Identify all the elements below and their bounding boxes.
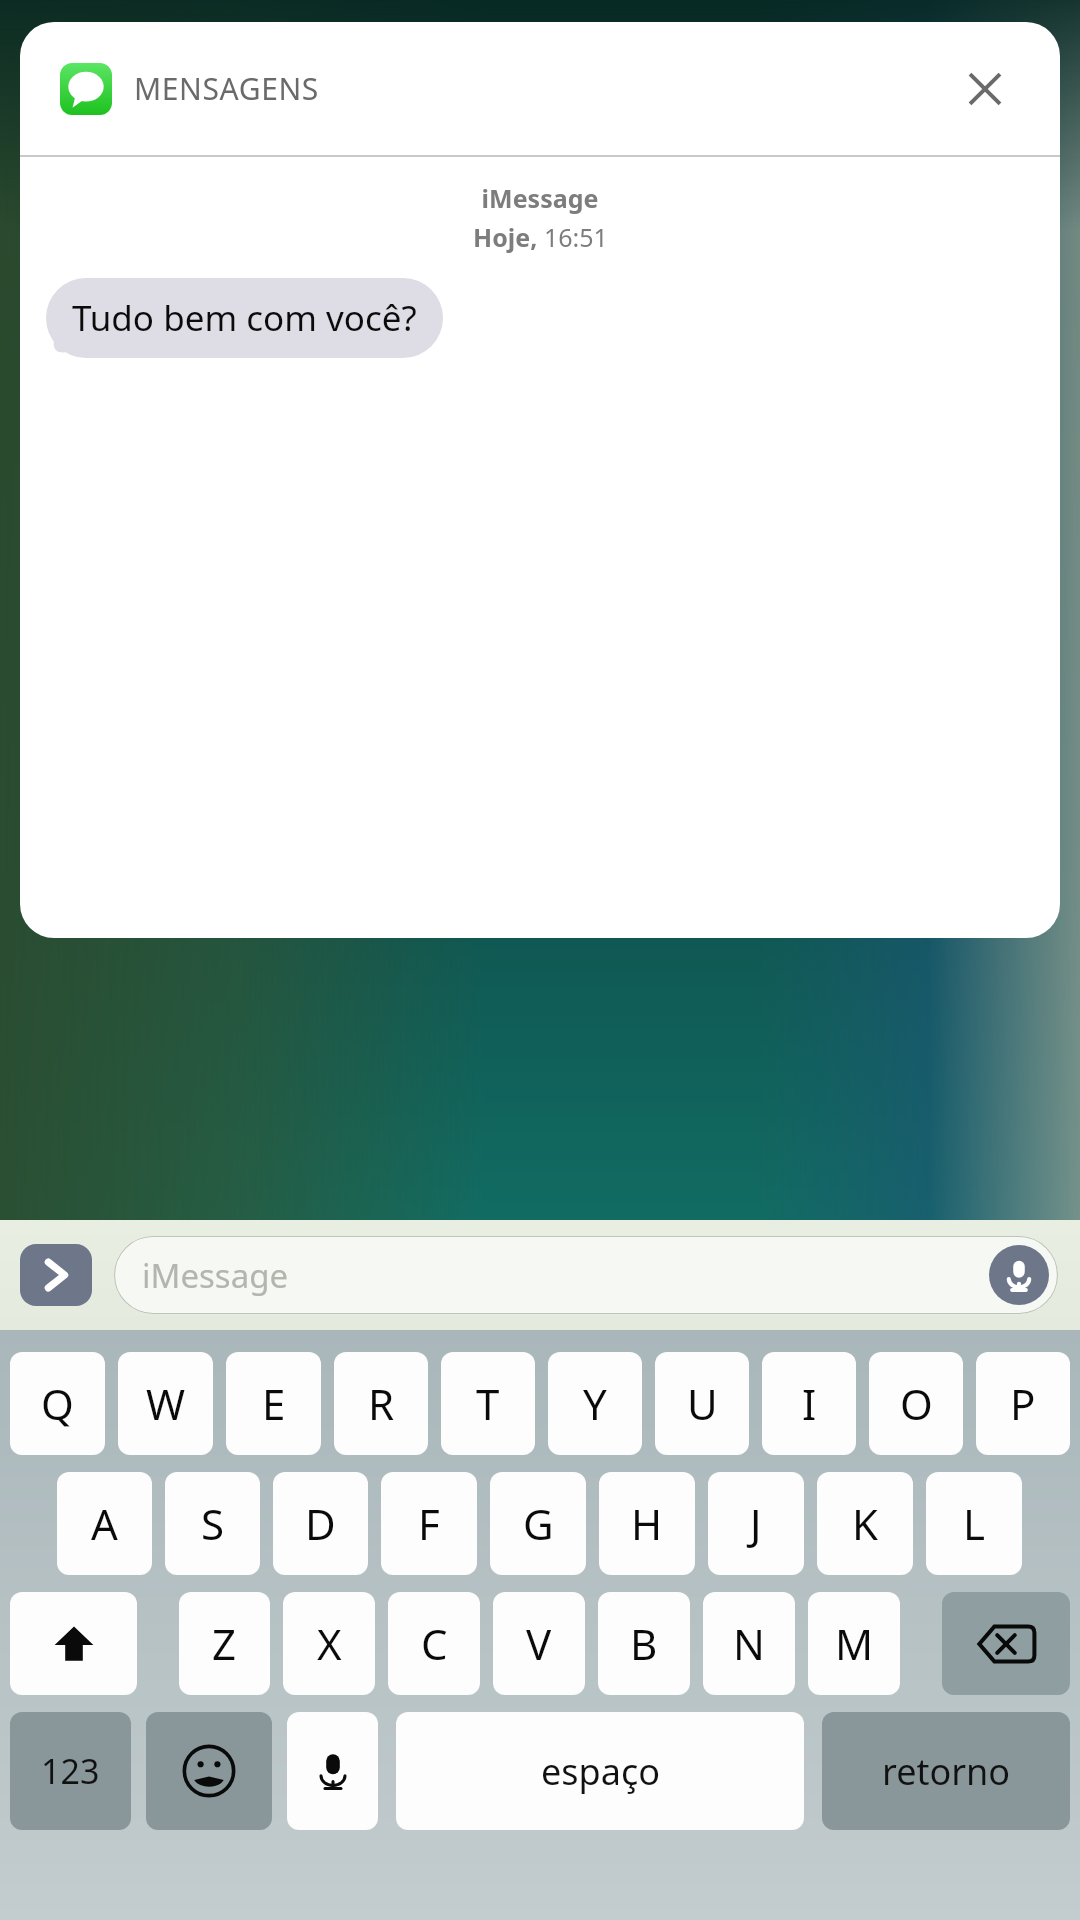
button[interactable]: I — [762, 1352, 856, 1455]
button[interactable]: O — [869, 1352, 963, 1455]
button[interactable]: Gravar áudio — [989, 1245, 1049, 1305]
button[interactable]: T — [441, 1352, 535, 1455]
button[interactable]: C — [388, 1592, 480, 1695]
button[interactable]: Q — [10, 1352, 105, 1455]
staticText: Hoje, — [473, 220, 544, 254]
button[interactable]: G — [490, 1472, 586, 1575]
staticText: I — [802, 1375, 817, 1432]
button[interactable]: Números — [10, 1712, 131, 1830]
button[interactable]: R — [334, 1352, 428, 1455]
button[interactable]: Fechar — [950, 54, 1020, 124]
button[interactable]: M — [808, 1592, 900, 1695]
button[interactable]: D — [273, 1472, 368, 1575]
button[interactable]: Ditado — [287, 1712, 378, 1830]
staticText: S — [201, 1495, 225, 1552]
button[interactable]: Z — [179, 1592, 270, 1695]
button[interactable]: N — [703, 1592, 795, 1695]
staticText: F — [418, 1495, 440, 1552]
button[interactable]: X — [283, 1592, 375, 1695]
staticText: O — [900, 1375, 933, 1432]
staticText: T — [476, 1375, 500, 1432]
staticText: U — [687, 1375, 718, 1432]
staticText: D — [305, 1495, 336, 1552]
button[interactable]: S — [165, 1472, 260, 1575]
button[interactable]: B — [598, 1592, 690, 1695]
button[interactable]: F — [381, 1472, 477, 1575]
button[interactable]: V — [493, 1592, 585, 1695]
button[interactable]: U — [655, 1352, 749, 1455]
staticText: Z — [212, 1615, 237, 1672]
staticText: Q — [41, 1375, 74, 1432]
button[interactable]: Mais apps — [20, 1244, 92, 1306]
staticText: iMessage — [20, 181, 1060, 215]
button[interactable]: E — [226, 1352, 321, 1455]
button[interactable]: J — [708, 1472, 804, 1575]
staticText: espaço — [541, 1747, 660, 1796]
button[interactable]: A — [57, 1472, 152, 1575]
staticText: 16:51 — [544, 220, 608, 254]
staticText: iMessage — [142, 1253, 289, 1298]
staticText: R — [368, 1375, 395, 1432]
staticText: Y — [583, 1375, 607, 1432]
button[interactable]: retorno — [822, 1712, 1070, 1830]
staticText: K — [852, 1495, 878, 1552]
staticText: G — [523, 1495, 554, 1552]
button[interactable]: iMessage — [114, 1236, 1058, 1314]
staticText: C — [421, 1615, 448, 1672]
staticText: W — [146, 1375, 186, 1432]
staticText: L — [963, 1495, 986, 1552]
button[interactable]: MENSAGENS — [20, 22, 1060, 938]
button[interactable]: K — [817, 1472, 913, 1575]
staticText: J — [750, 1495, 762, 1552]
staticText: N — [733, 1615, 765, 1672]
staticText: Tudo bem com você? — [72, 294, 417, 342]
staticText: H — [631, 1495, 663, 1552]
staticText: E — [262, 1375, 286, 1432]
staticText: X — [317, 1615, 342, 1672]
button[interactable]: P — [976, 1352, 1070, 1455]
button[interactable]: espaço — [396, 1712, 804, 1830]
button[interactable]: Tudo bem com você? — [40, 278, 443, 358]
staticText: 123 — [41, 1748, 100, 1794]
staticText: P — [1010, 1375, 1036, 1432]
button[interactable]: L — [926, 1472, 1022, 1575]
button[interactable]: Apagar — [942, 1592, 1070, 1695]
button[interactable]: W — [118, 1352, 213, 1455]
button[interactable]: H — [599, 1472, 695, 1575]
staticText: MENSAGENS — [134, 68, 319, 109]
staticText: A — [91, 1495, 118, 1552]
button[interactable]: Emoji — [146, 1712, 272, 1830]
button[interactable]: Y — [548, 1352, 642, 1455]
staticText: B — [630, 1615, 658, 1672]
staticText: M — [835, 1615, 874, 1672]
staticText: retorno — [882, 1747, 1011, 1796]
button[interactable]: Maiúsculas — [10, 1592, 137, 1695]
staticText: V — [526, 1615, 552, 1672]
